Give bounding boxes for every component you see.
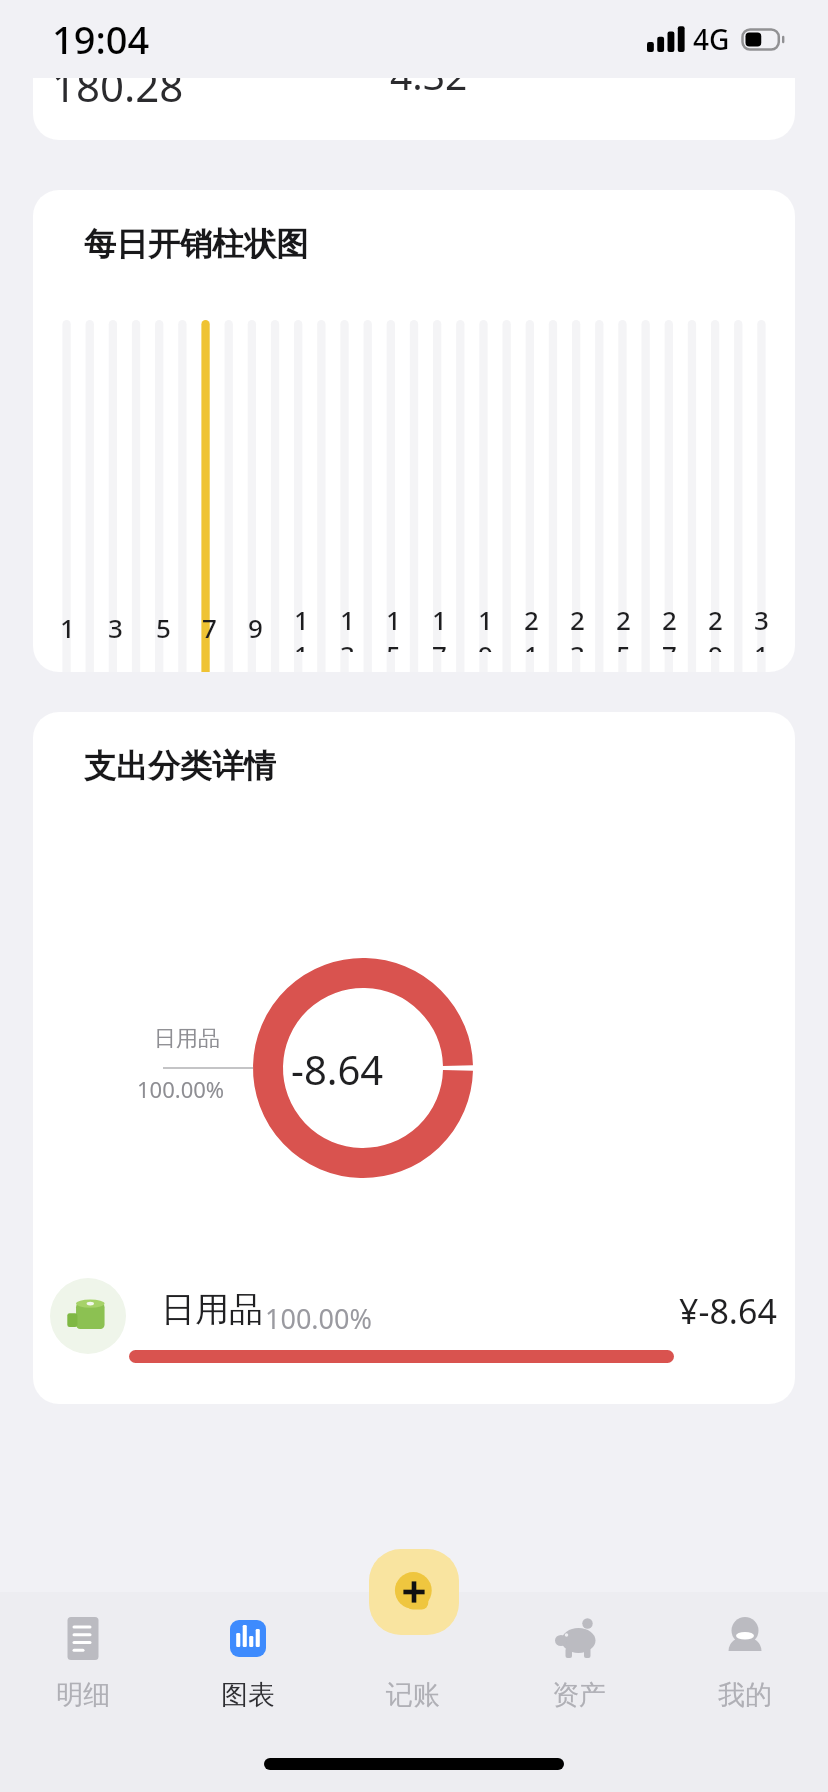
staticText: 每日开销柱状图 [84,224,308,264]
staticText: 资产 [552,1678,606,1712]
staticText: 25 [612,602,635,652]
button[interactable]: 记账 [330,1592,496,1732]
button[interactable]: 资产 [496,1592,662,1732]
staticText: 明细 [56,1678,110,1712]
staticText: 记账 [386,1678,440,1712]
staticText: 11 [290,602,313,652]
button[interactable]: 日用品 [33,1264,795,1384]
staticText: 100.00% [265,1300,372,1337]
staticText: 1 [60,610,75,645]
staticText: -8.64 [291,1042,384,1096]
staticText: 100.00% [137,1074,225,1104]
button[interactable]: 记账 Add transaction [369,1549,459,1635]
staticText: 日用品 [161,1288,263,1331]
staticText: 3 [108,610,123,645]
staticText: 17 [428,602,451,652]
button[interactable]: 图表 [165,1592,330,1732]
staticText: 180.28 [52,78,184,114]
button[interactable]: 明细 [0,1592,165,1732]
staticText: ¥-8.64 [679,1288,777,1334]
staticText: 23 [566,602,589,652]
staticText: 日用品 [154,1025,220,1053]
staticText: 29 [704,602,727,652]
staticText: 图表 [221,1678,275,1712]
staticText: 7 [202,610,217,645]
staticText: 4G [693,20,730,58]
staticText: 27 [658,602,681,652]
button[interactable]: 我的 [662,1592,828,1732]
button[interactable]: 180.28 [33,78,795,140]
staticText: 4.32 [390,78,468,101]
staticText: 5 [156,610,171,645]
staticText: 我的 [718,1678,772,1712]
staticText: 13 [336,602,359,652]
staticText: 31 [750,602,773,652]
staticText: 21 [520,602,543,652]
staticText: 支出分类详情 [84,746,276,786]
staticText: 15 [382,602,405,652]
staticText: 19:04 [52,13,150,65]
staticText: 9 [248,610,263,645]
staticText: 19 [474,602,497,652]
